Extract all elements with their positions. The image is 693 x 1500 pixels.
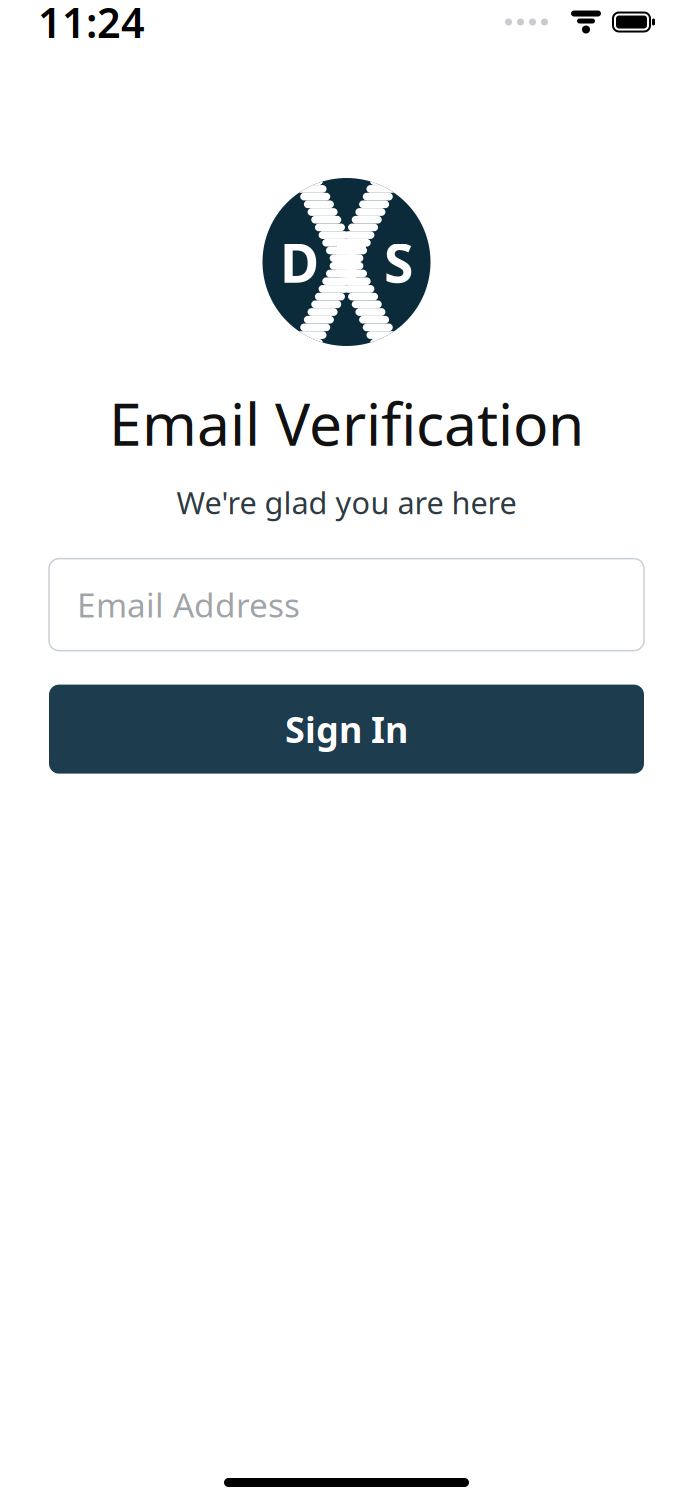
staticText: T — [336, 227, 367, 297]
staticText: We're glad you are here — [176, 482, 516, 523]
staticText: Email Verification — [109, 384, 584, 462]
staticText: D — [280, 227, 319, 297]
staticText: 11:24 — [38, 0, 145, 49]
button[interactable]: Sign In — [49, 685, 644, 774]
staticText: Email Address — [77, 582, 300, 627]
staticText: S — [384, 227, 413, 297]
staticText: Sign In — [285, 705, 408, 753]
button[interactable]: Email Address — [49, 559, 644, 651]
